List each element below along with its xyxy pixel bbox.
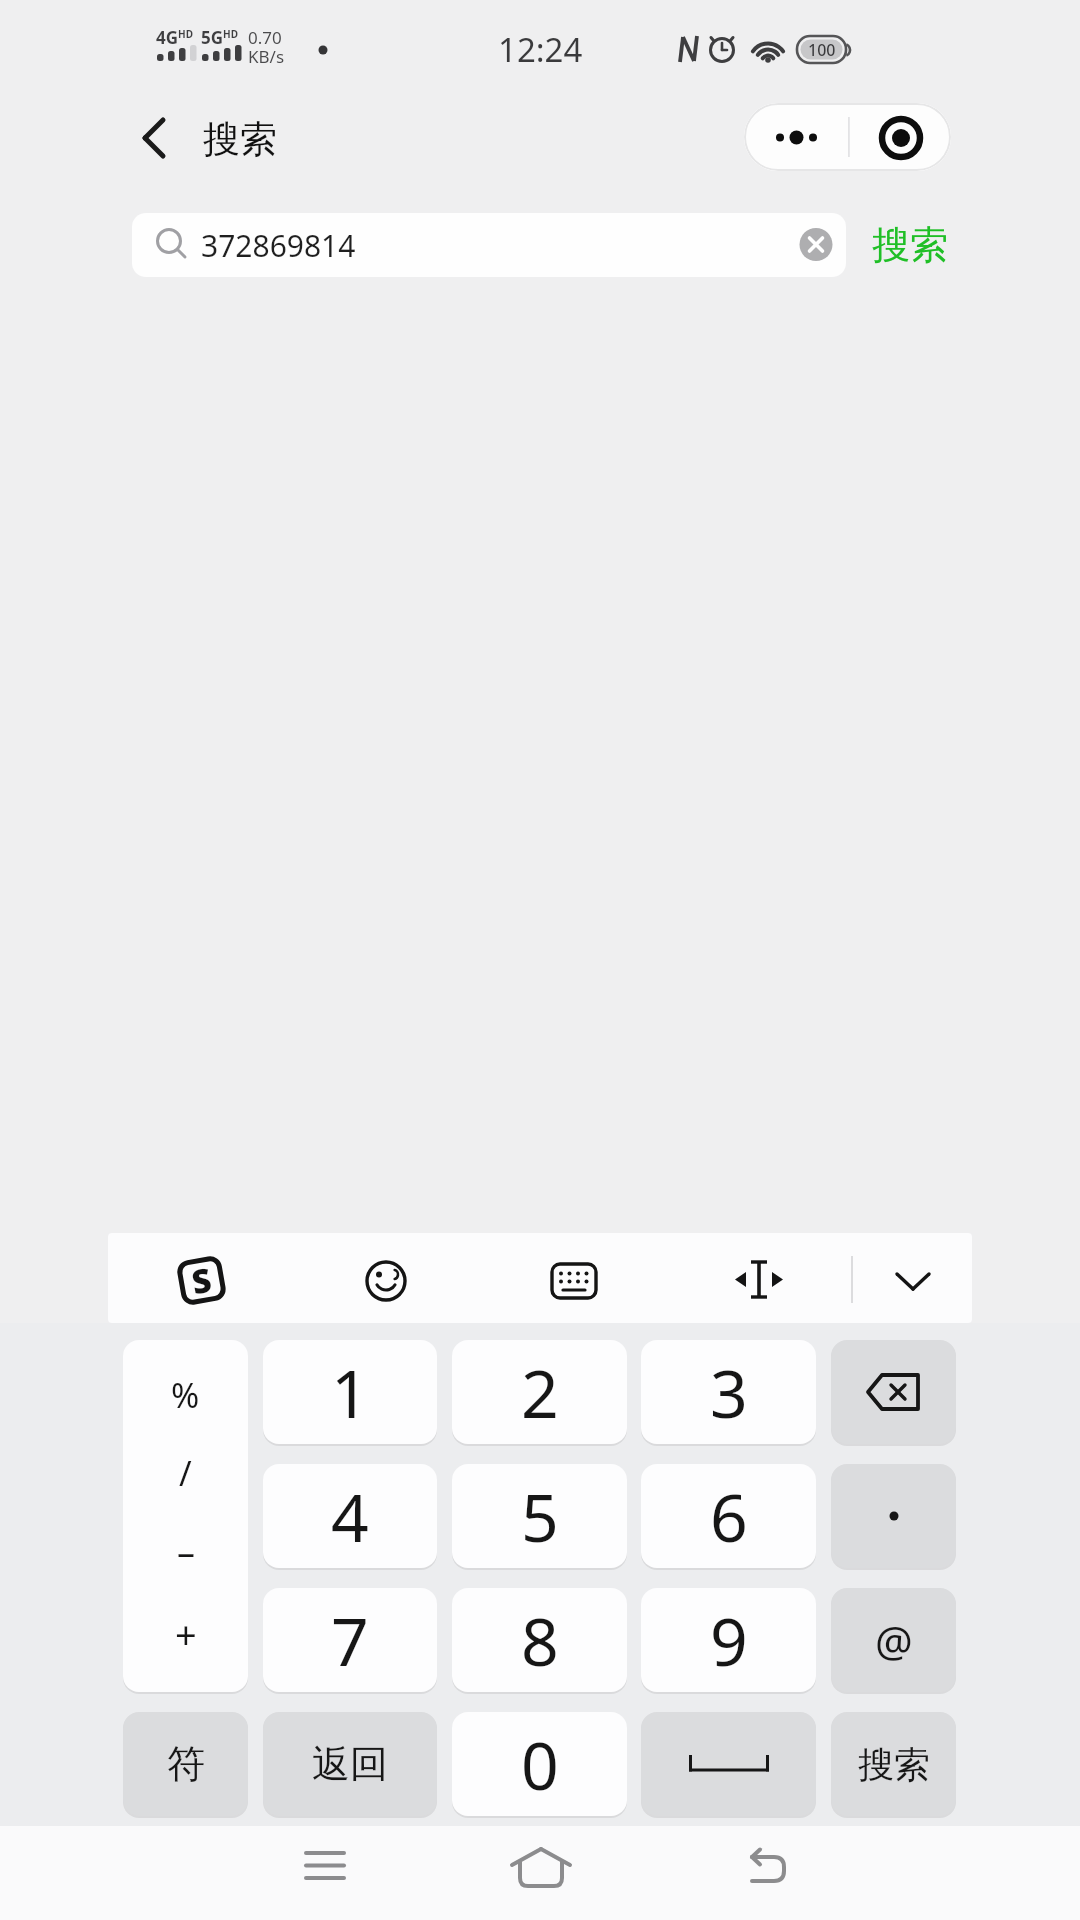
button[interactable]: 搜索	[831, 1712, 956, 1816]
button[interactable]	[831, 1464, 956, 1568]
staticText: –	[177, 1527, 195, 1576]
staticText: 9	[710, 1595, 748, 1685]
button[interactable]	[730, 1252, 790, 1312]
staticText: %	[171, 1372, 200, 1418]
staticText: 4	[331, 1471, 369, 1561]
button[interactable]: 返回	[263, 1712, 437, 1816]
button[interactable]	[360, 1826, 720, 1920]
button[interactable]: 8	[452, 1588, 627, 1692]
button[interactable]: 2	[452, 1340, 627, 1444]
button[interactable]	[885, 1252, 945, 1312]
staticText: 6	[710, 1471, 748, 1561]
button[interactable]	[720, 1826, 1080, 1920]
staticText: KB/s	[248, 45, 285, 68]
button[interactable]: @	[831, 1588, 956, 1692]
button[interactable]: 372869814	[132, 213, 846, 277]
staticText: 0.70	[248, 26, 282, 49]
staticText: 0	[521, 1719, 559, 1809]
button[interactable]: 符	[123, 1712, 248, 1816]
button[interactable]	[641, 1712, 816, 1816]
staticText: HD	[178, 27, 193, 41]
staticText: 12:24	[498, 27, 583, 71]
button[interactable]: 7	[263, 1588, 437, 1692]
button[interactable]: 6	[641, 1464, 816, 1568]
button[interactable]	[0, 1826, 360, 1920]
button[interactable]: 4	[263, 1464, 437, 1568]
staticText: 符	[167, 1740, 205, 1788]
staticText: 8	[521, 1595, 559, 1685]
button[interactable]	[545, 1252, 605, 1312]
button[interactable]: 1	[263, 1340, 437, 1444]
staticText: 3	[710, 1347, 748, 1437]
button[interactable]: 3	[641, 1340, 816, 1444]
staticText: 4G	[156, 26, 179, 49]
staticText: 返回	[312, 1740, 388, 1788]
staticText: 5G	[201, 26, 224, 49]
staticText: @	[875, 1612, 913, 1669]
staticText: 2	[521, 1347, 559, 1437]
button[interactable]: 9	[641, 1588, 816, 1692]
button[interactable]: 5	[452, 1464, 627, 1568]
staticText: 搜索	[203, 116, 277, 163]
staticText: HD	[223, 27, 238, 41]
button[interactable]: 0	[452, 1712, 627, 1816]
button[interactable]	[744, 103, 848, 171]
button[interactable]	[130, 108, 180, 168]
staticText: 372869814	[201, 225, 356, 266]
button[interactable]	[355, 1252, 415, 1312]
staticText: 搜索	[858, 1742, 930, 1787]
staticText: 5	[521, 1471, 559, 1561]
button[interactable]	[848, 103, 951, 171]
staticText: 搜索	[872, 221, 948, 269]
button[interactable]	[831, 1340, 956, 1444]
staticText: S	[188, 1256, 216, 1304]
button[interactable]: 搜索	[860, 213, 960, 277]
staticText: 100	[808, 39, 836, 61]
button[interactable]: %	[123, 1340, 248, 1692]
button[interactable]: S	[175, 1254, 227, 1306]
staticText: /	[179, 1450, 192, 1496]
staticText: +	[175, 1608, 197, 1660]
staticText: 7	[331, 1595, 369, 1685]
staticText: 1	[331, 1347, 369, 1437]
